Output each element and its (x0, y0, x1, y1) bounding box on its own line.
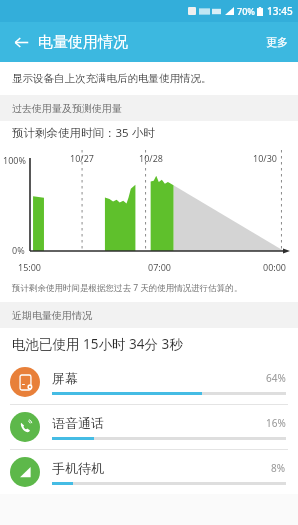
staticText: 过去使用量及预测使用量 (12, 102, 122, 115)
button[interactable]: Back (6, 27, 36, 57)
staticText: 13:45 (267, 4, 293, 18)
staticText: 更多 (266, 35, 288, 49)
staticText: 屏幕 (52, 370, 266, 386)
staticText: 8% (271, 461, 286, 475)
staticText: 近期电量使用情况 (12, 309, 92, 322)
button[interactable]: 更多 (256, 27, 298, 57)
staticText: 70% (237, 5, 255, 17)
staticText: 显示设备自上次充满电后的电量使用情况。 (12, 72, 212, 85)
staticText: 预计剩余使用时间是根据您过去 7 天的使用情况进行估算的。 (12, 282, 243, 294)
staticText: 语音通话 (52, 415, 266, 431)
button[interactable]: 语音通话 (0, 405, 298, 449)
staticText: 16% (266, 416, 286, 430)
staticText: 预计剩余使用时间：35 小时 (12, 125, 155, 141)
button[interactable]: 屏幕 (0, 360, 298, 404)
staticText: 100% (3, 154, 26, 166)
staticText: 00:00 (263, 261, 287, 273)
staticText: 电池已使用 15小时 34分 3秒 (12, 335, 183, 353)
staticText: 手机待机 (52, 460, 271, 476)
staticText: 07:00 (148, 261, 172, 273)
staticText: 64% (266, 371, 286, 385)
staticText: 0% (12, 244, 25, 256)
staticText: 15:00 (18, 261, 42, 273)
staticText: 电量使用情况 (38, 33, 128, 52)
staticText: 10/28 (139, 152, 163, 164)
button[interactable]: 手机待机 (0, 450, 298, 494)
staticText: 10/27 (70, 152, 94, 164)
staticText: 10/30 (253, 152, 277, 164)
